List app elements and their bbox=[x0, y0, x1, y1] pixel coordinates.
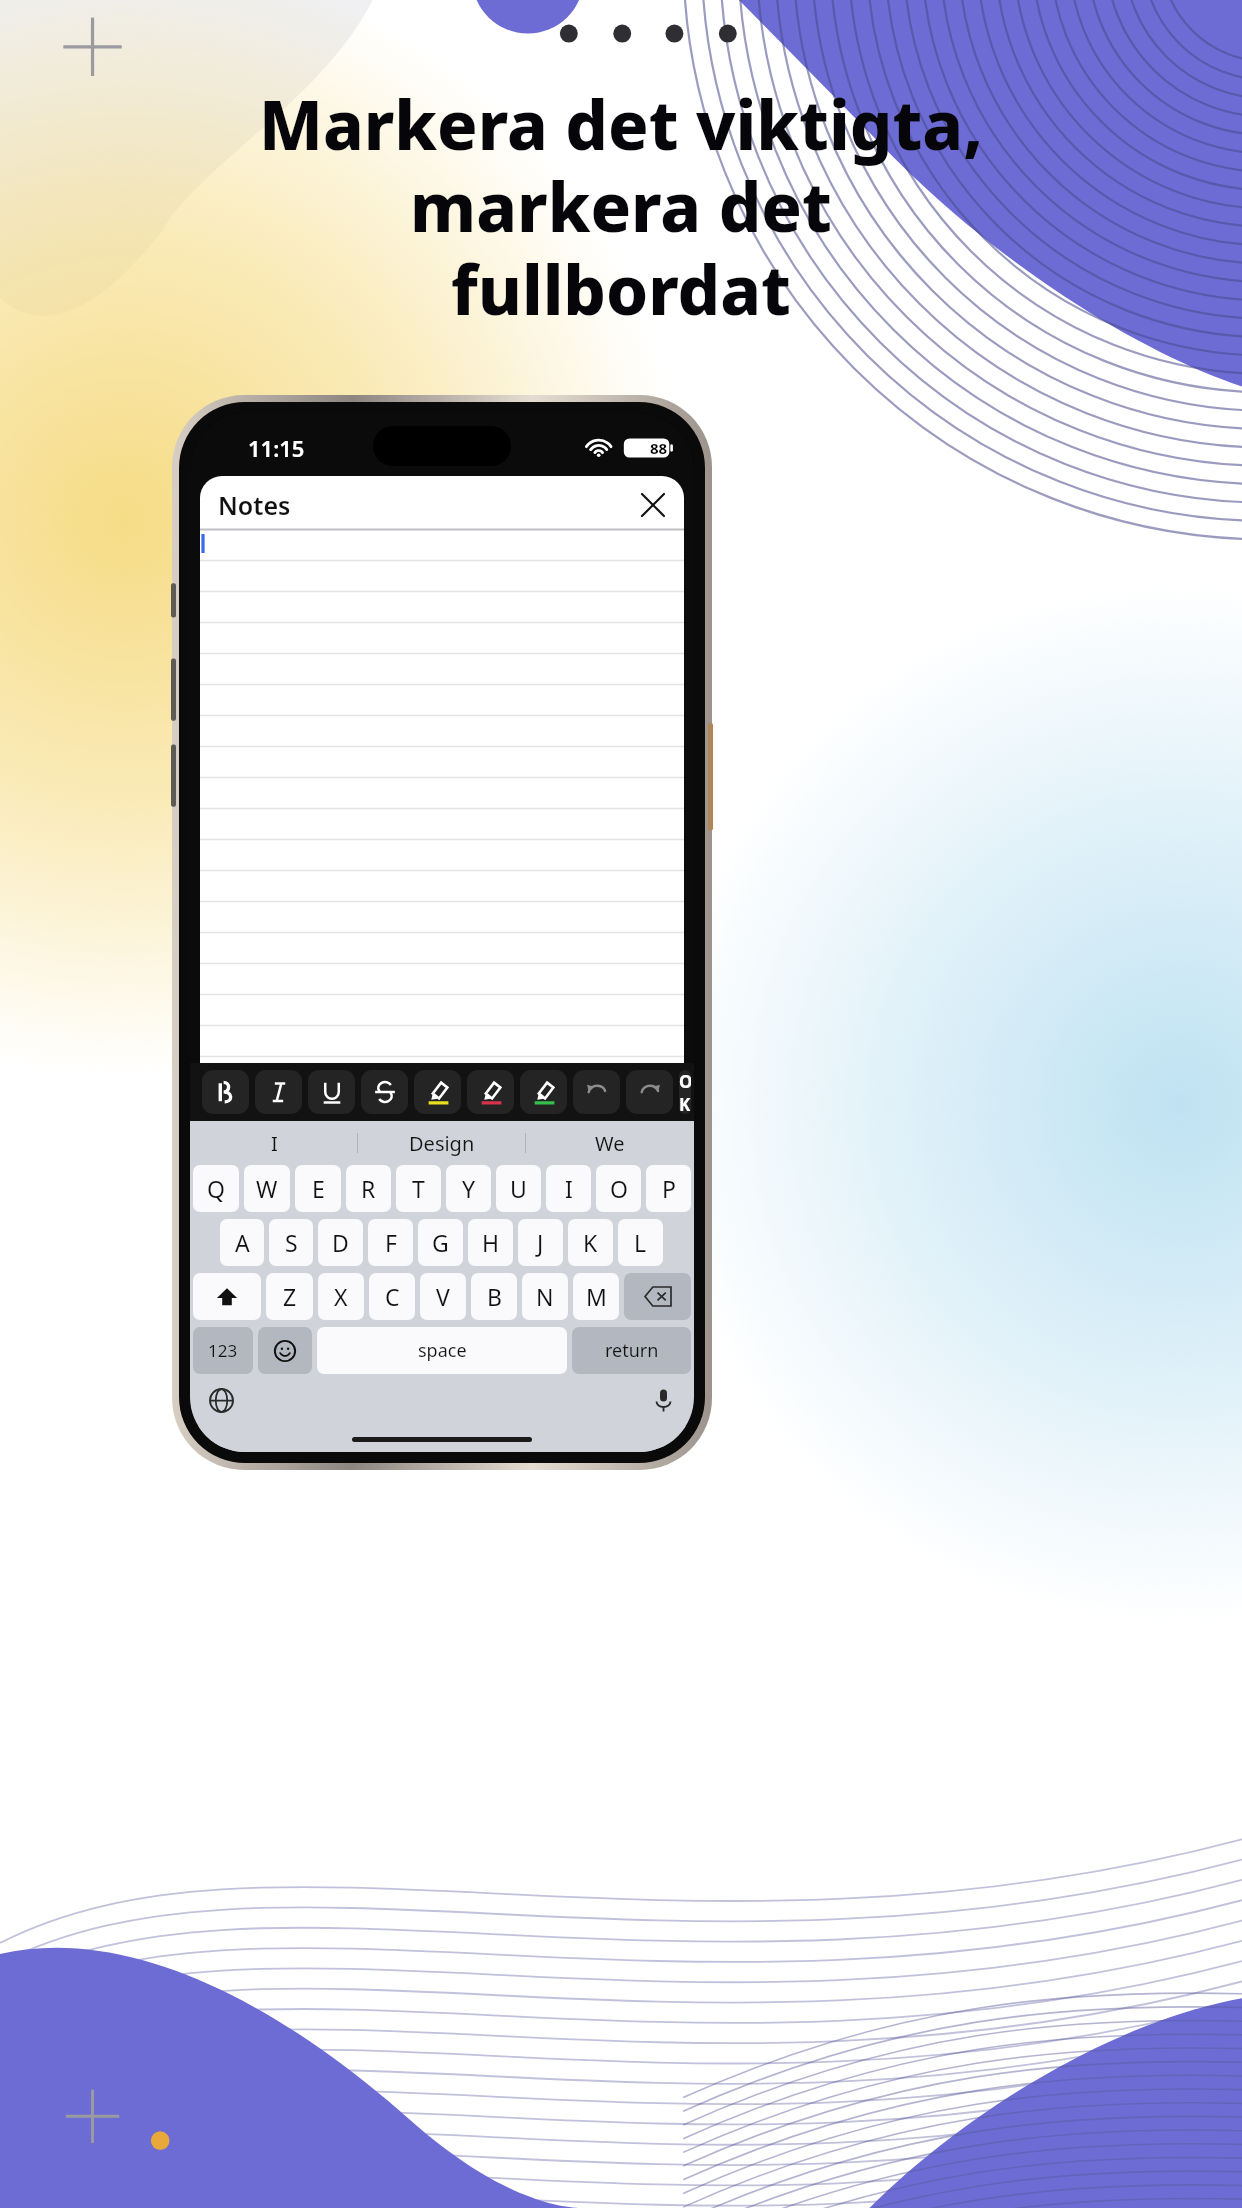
staticText: R bbox=[361, 1173, 376, 1204]
staticText: M bbox=[586, 1281, 607, 1312]
staticText: L bbox=[634, 1227, 647, 1258]
button[interactable]: Underline bbox=[308, 1070, 355, 1114]
button[interactable]: Backspace bbox=[624, 1273, 691, 1320]
button[interactable]: E bbox=[295, 1165, 341, 1212]
button[interactable]: Strikethrough bbox=[361, 1070, 408, 1114]
staticText: 123 bbox=[208, 1339, 238, 1362]
staticText: G bbox=[432, 1227, 449, 1258]
button[interactable]: P bbox=[646, 1165, 691, 1212]
button[interactable]: V bbox=[420, 1273, 466, 1320]
staticText: D bbox=[332, 1227, 349, 1258]
button[interactable]: We bbox=[526, 1121, 694, 1165]
staticText: K bbox=[583, 1227, 598, 1258]
button[interactable]: 123 bbox=[193, 1327, 253, 1374]
button[interactable]: W bbox=[244, 1165, 290, 1212]
staticText: T bbox=[412, 1173, 425, 1204]
button[interactable]: T bbox=[396, 1165, 441, 1212]
staticText: P bbox=[662, 1173, 676, 1204]
staticText: V bbox=[436, 1281, 450, 1312]
staticText: I bbox=[271, 1130, 278, 1157]
button[interactable]: return bbox=[572, 1327, 691, 1374]
staticText: 11:15 bbox=[248, 433, 305, 463]
button[interactable]: Undo bbox=[573, 1070, 620, 1114]
staticText: B bbox=[487, 1281, 502, 1312]
staticText: N bbox=[536, 1281, 554, 1312]
staticText: I bbox=[565, 1173, 573, 1204]
staticText: Notes bbox=[218, 488, 291, 522]
button[interactable]: Italic bbox=[255, 1070, 302, 1114]
staticText: C bbox=[385, 1281, 400, 1312]
staticText: return bbox=[605, 1338, 659, 1363]
button[interactable]: N bbox=[522, 1273, 568, 1320]
button[interactable]: Change keyboard bbox=[204, 1383, 238, 1417]
staticText: O bbox=[610, 1173, 628, 1204]
button[interactable]: X bbox=[318, 1273, 364, 1320]
staticText: W bbox=[256, 1173, 278, 1204]
staticText: J bbox=[537, 1227, 544, 1258]
staticText: Z bbox=[283, 1281, 297, 1312]
staticText: Design bbox=[409, 1130, 475, 1157]
button[interactable]: Close bbox=[636, 488, 670, 522]
staticText: A bbox=[235, 1227, 250, 1258]
staticText: Q bbox=[207, 1173, 225, 1204]
staticText: space bbox=[418, 1338, 467, 1363]
button[interactable]: J bbox=[518, 1219, 563, 1266]
button[interactable]: A bbox=[220, 1219, 264, 1266]
button[interactable]: Redo bbox=[626, 1070, 673, 1114]
button[interactable]: I bbox=[190, 1121, 358, 1165]
button[interactable]: L bbox=[618, 1219, 663, 1266]
button[interactable]: B bbox=[471, 1273, 517, 1320]
button[interactable]: Dictate bbox=[646, 1383, 680, 1417]
button[interactable]: G bbox=[418, 1219, 463, 1266]
button[interactable]: Bold bbox=[202, 1070, 249, 1114]
button[interactable]: K bbox=[568, 1219, 613, 1266]
button[interactable]: Shift bbox=[193, 1273, 261, 1320]
staticText: F bbox=[385, 1227, 397, 1258]
button[interactable]: Design bbox=[358, 1121, 526, 1165]
button[interactable]: Green highlighter bbox=[520, 1070, 567, 1114]
staticText: S bbox=[285, 1227, 298, 1258]
button[interactable]: H bbox=[468, 1219, 513, 1266]
staticText: We bbox=[595, 1130, 625, 1157]
button[interactable]: Yellow highlighter bbox=[414, 1070, 461, 1114]
button[interactable]: R bbox=[346, 1165, 391, 1212]
button[interactable]: D bbox=[318, 1219, 363, 1266]
button[interactable]: space bbox=[317, 1327, 567, 1374]
button[interactable]: OK bbox=[679, 1070, 691, 1114]
staticText: Y bbox=[462, 1173, 476, 1204]
button[interactable]: C bbox=[369, 1273, 415, 1320]
staticText: Markera det viktigta, markera det fullbo… bbox=[70, 78, 1172, 335]
button[interactable]: F bbox=[368, 1219, 413, 1266]
button[interactable]: Red highlighter bbox=[467, 1070, 514, 1114]
button[interactable]: Y bbox=[446, 1165, 491, 1212]
staticText: U bbox=[510, 1173, 527, 1204]
staticText: 88 bbox=[650, 438, 668, 458]
button[interactable]: U bbox=[496, 1165, 541, 1212]
button[interactable]: S bbox=[269, 1219, 313, 1266]
button[interactable]: I bbox=[546, 1165, 591, 1212]
staticText: X bbox=[334, 1281, 348, 1312]
button[interactable]: O bbox=[596, 1165, 641, 1212]
button[interactable]: Q bbox=[193, 1165, 239, 1212]
staticText: E bbox=[312, 1173, 325, 1204]
staticText: H bbox=[482, 1227, 500, 1258]
button[interactable]: Emoji bbox=[258, 1327, 312, 1374]
button[interactable]: Z bbox=[266, 1273, 313, 1320]
staticText: OK bbox=[679, 1070, 691, 1114]
button[interactable]: M bbox=[573, 1273, 619, 1320]
